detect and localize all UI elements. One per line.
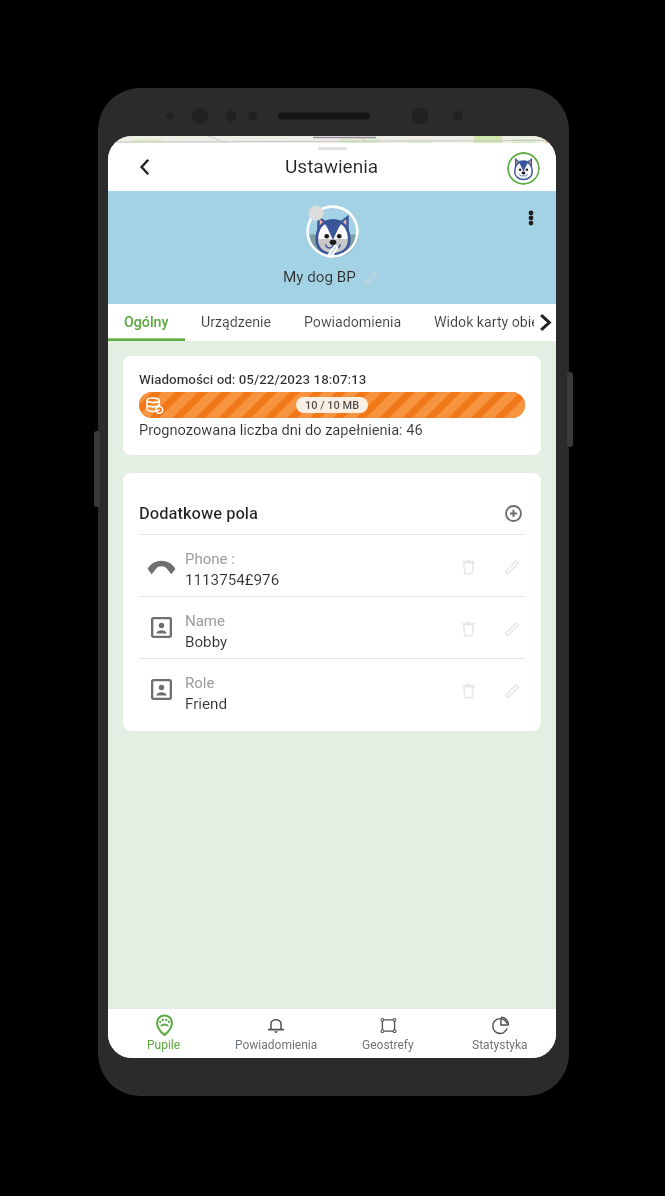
button[interactable]: More options <box>516 203 546 233</box>
button[interactable]: Delete <box>451 611 485 645</box>
staticText: 10 / 10 MB <box>305 399 360 412</box>
staticText: Dodatkowe pola <box>139 504 258 523</box>
staticText: Geostrefy <box>362 1038 414 1052</box>
staticText: Prognozowana liczba dni do zapełnienia: … <box>139 421 423 438</box>
staticText: Powiadomienia <box>235 1038 318 1052</box>
button[interactable]: Delete <box>451 549 485 583</box>
button[interactable]: Profile <box>506 151 540 185</box>
button[interactable]: Add field <box>498 498 528 528</box>
staticText: Friend <box>185 695 228 713</box>
button[interactable]: Geostrefy <box>332 1009 444 1058</box>
staticText: Role <box>185 674 215 692</box>
button[interactable]: Powiadomienia <box>288 304 418 341</box>
staticText: My dog BP <box>283 268 356 286</box>
staticText: Phone : <box>185 550 235 568</box>
button[interactable]: Dodatkowe pola <box>123 492 541 534</box>
button[interactable]: Widok karty obiektu <box>418 304 556 341</box>
button[interactable]: Pupile <box>108 1009 220 1058</box>
staticText: Widok karty obiektu <box>434 314 556 331</box>
staticText: Ogólny <box>124 314 169 331</box>
button[interactable]: More tabs <box>534 304 556 341</box>
staticText: Bobby <box>185 633 228 651</box>
staticText: Statystyka <box>472 1038 528 1052</box>
button[interactable]: Name <box>123 597 541 658</box>
button[interactable]: Edit <box>495 549 529 583</box>
button[interactable]: Edit <box>495 673 529 707</box>
button[interactable]: Ogólny <box>108 304 185 341</box>
button[interactable]: Delete <box>451 673 485 707</box>
button[interactable]: Edit <box>495 611 529 645</box>
button[interactable]: Powiadomienia <box>220 1009 332 1058</box>
staticText: Wiadomości od: 05/22/2023 18:07:13 <box>139 372 367 388</box>
staticText: Ustawienia <box>285 155 379 177</box>
button[interactable]: Urządzenie <box>185 304 288 341</box>
staticText: Pupile <box>147 1038 181 1052</box>
staticText: Powiadomienia <box>304 314 402 331</box>
button[interactable]: Back <box>125 147 165 187</box>
button[interactable]: Phone : <box>123 535 541 596</box>
button[interactable]: Pet avatar <box>306 205 359 258</box>
staticText: 1113754£976 <box>185 571 280 589</box>
button[interactable]: Edit name <box>360 266 382 288</box>
button[interactable]: Statystyka <box>444 1009 556 1058</box>
staticText: Name <box>185 612 225 630</box>
button[interactable]: Role <box>123 659 541 720</box>
staticText: Urządzenie <box>201 314 272 331</box>
